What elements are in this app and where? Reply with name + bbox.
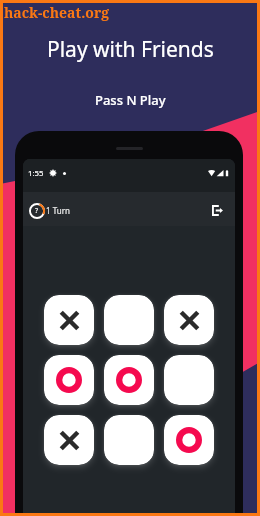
button[interactable]: Exit game (210, 203, 225, 218)
button[interactable] (164, 415, 214, 465)
button[interactable] (104, 355, 154, 405)
staticText: hack-cheat.org (4, 3, 110, 22)
button[interactable]: Turn timer (29, 203, 45, 219)
button[interactable] (104, 295, 154, 345)
button[interactable] (164, 355, 214, 405)
staticText: ? (35, 206, 39, 216)
button[interactable] (164, 295, 214, 345)
button[interactable] (44, 295, 94, 345)
button[interactable] (104, 415, 154, 465)
button[interactable] (44, 415, 94, 465)
staticText: Play with Friends (47, 35, 214, 64)
staticText: 1 Turn (46, 205, 70, 216)
staticText: Pass N Play (95, 91, 166, 109)
staticText: 1:55 (28, 168, 44, 179)
button[interactable] (44, 355, 94, 405)
